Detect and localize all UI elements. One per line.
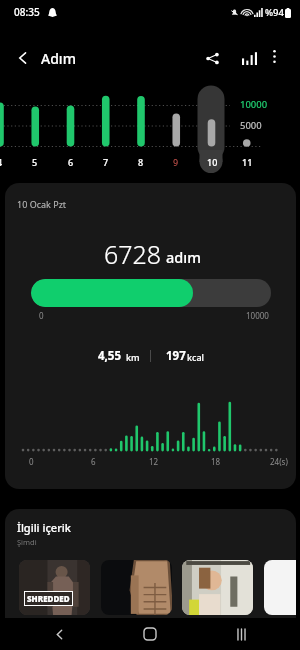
staticText: SHREDDED: [27, 593, 70, 604]
button[interactable]: More options: [258, 40, 290, 72]
staticText: 12: [149, 456, 159, 467]
staticText: kcal: [187, 351, 205, 363]
button[interactable]: 10 Ocak Pzt: [5, 183, 296, 489]
button[interactable]: Recent apps: [209, 619, 273, 649]
staticText: %94: [265, 6, 284, 19]
button[interactable]: 4: [0, 155, 12, 169]
staticText: 10 Ocak Pzt: [17, 198, 67, 210]
button[interactable]: Share: [194, 40, 230, 76]
button[interactable]: [182, 560, 253, 615]
button[interactable]: SHREDDED: [19, 560, 90, 615]
button[interactable]: Statistics: [230, 40, 266, 76]
staticText: 4: [0, 156, 3, 168]
button[interactable]: 8: [129, 155, 153, 169]
button[interactable]: Home: [118, 619, 182, 649]
staticText: 10000: [240, 98, 268, 111]
staticText: 4,55: [98, 348, 122, 364]
staticText: 6728: [104, 237, 162, 271]
staticText: 08:35: [14, 5, 40, 19]
button[interactable]: [264, 560, 296, 615]
staticText: Şimdi: [17, 537, 37, 547]
button[interactable]: 9: [164, 155, 188, 169]
staticText: 18: [211, 456, 221, 467]
button[interactable]: 6: [59, 155, 83, 169]
button[interactable]: 10: [200, 155, 224, 169]
staticText: 197: [166, 348, 186, 364]
button[interactable]: Back: [27, 619, 91, 649]
staticText: 10000: [246, 310, 269, 321]
staticText: 7: [103, 156, 109, 168]
staticText: Adım: [41, 49, 76, 68]
staticText: adım: [166, 247, 201, 267]
staticText: 24(s): [270, 456, 288, 467]
staticText: 10: [207, 156, 218, 168]
staticText: 6: [68, 156, 74, 168]
staticText: 0: [29, 456, 34, 467]
button[interactable]: 5: [23, 155, 47, 169]
button[interactable]: [101, 560, 172, 615]
button[interactable]: Back: [5, 40, 41, 76]
staticText: 11: [242, 156, 253, 168]
staticText: 5: [32, 156, 38, 168]
staticText: 8: [138, 156, 144, 168]
button[interactable]: 11: [235, 155, 259, 169]
staticText: 6: [91, 456, 96, 467]
staticText: km: [126, 351, 140, 363]
button[interactable]: 7: [94, 155, 118, 169]
staticText: 5000: [240, 119, 262, 132]
staticText: 0: [39, 310, 44, 321]
staticText: İlgili içerik: [17, 520, 71, 535]
staticText: 9: [173, 156, 179, 168]
